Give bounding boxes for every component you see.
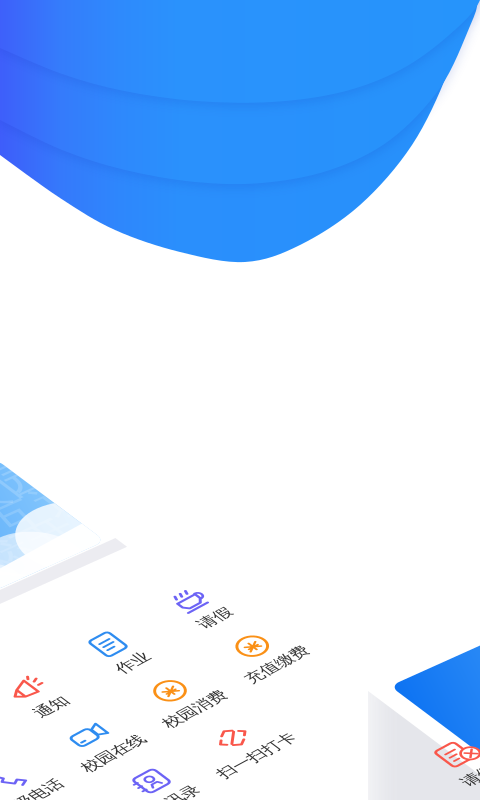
button[interactable]: 请假 — [281, 233, 374, 318]
staticText: 请假条 — [21, 51, 72, 73]
button[interactable]: 请假条 — [0, 0, 93, 85]
button[interactable]: 通知 — [94, 233, 187, 318]
button[interactable]: 作业 — [187, 233, 280, 318]
